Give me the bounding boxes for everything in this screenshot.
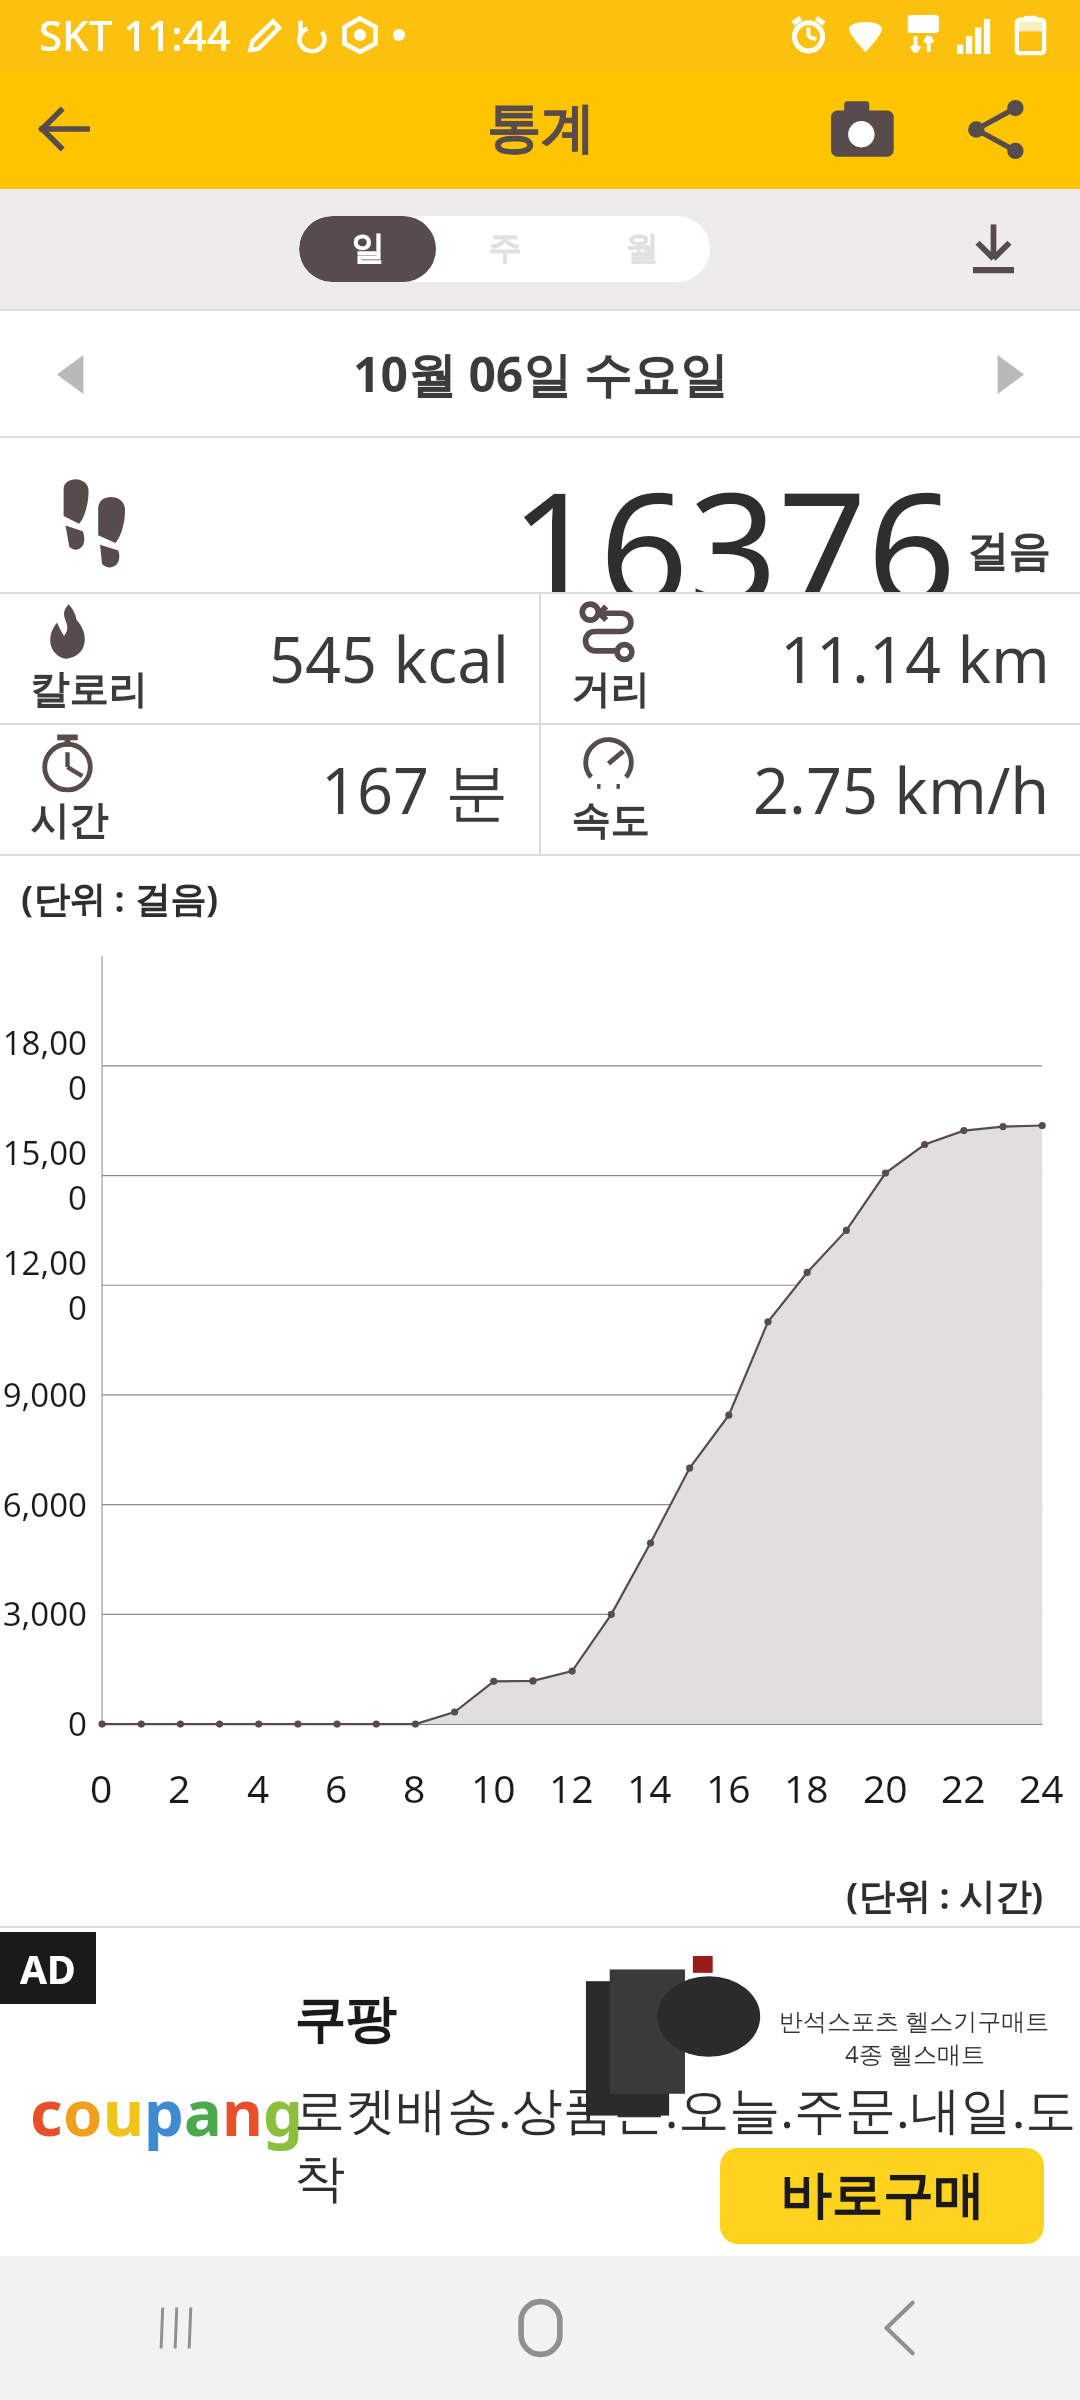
staticText: 4 [247,1761,270,1814]
staticText: 16376 [510,438,957,594]
staticText: 주 [488,228,521,270]
staticText: g [263,2069,303,2155]
staticText: 8 [403,1761,426,1814]
staticText: 칼로리 [30,665,147,714]
staticText: 4종 헬스매트 [845,2037,985,2070]
staticText: 18 [784,1761,829,1814]
staticText: p [144,2069,184,2155]
staticText: 쿠팡 [294,1988,396,2052]
button[interactable]: AD [0,1926,1080,2256]
staticText: 로켓배송.상품은.오늘.주문.내일.도착 [294,2073,1080,2212]
staticText: 10월 06일 수요일 [353,341,728,407]
staticText: 걸음 [966,526,1050,579]
button[interactable]: Share [942,75,1050,183]
button[interactable]: 월 [573,216,710,282]
button[interactable]: 칼로리 [0,594,539,723]
staticText: 18,000 [0,1020,87,1110]
staticText: (단위 : 시간) [846,1871,1044,1920]
button[interactable]: Home [360,2256,720,2400]
staticText: 6,000 [2,1482,87,1527]
button[interactable]: 바로구매 [720,2148,1044,2244]
staticText: 0 [90,1761,113,1814]
staticText: 16 [706,1761,751,1814]
staticText: 24 [1019,1761,1064,1814]
button[interactable]: Recents [0,2256,360,2400]
staticText: 20 [863,1761,908,1814]
button[interactable]: 일 [299,216,436,282]
button[interactable]: 시간 [0,725,539,854]
staticText: 14 [627,1761,672,1814]
staticText: 545 kcal [269,616,509,702]
staticText: c [30,2069,63,2155]
staticText: SKT 11:44 [39,6,231,63]
staticText: 15,000 [0,1130,87,1220]
staticText: 12 [549,1761,594,1814]
staticText: 2.75 km/h [753,747,1050,833]
button[interactable]: Back [720,2256,1080,2400]
staticText: 바로구매 [780,2164,984,2228]
button[interactable]: Camera [810,75,918,183]
staticText: AD [20,1942,76,1995]
button[interactable]: 거리 [541,594,1080,723]
staticText: 속도 [571,796,649,845]
staticText: 0 [68,1701,87,1746]
staticText: (단위 : 걸음) [21,874,219,923]
button[interactable]: Previous day [12,314,132,434]
button[interactable]: Next day [948,314,1068,434]
staticText: 9,000 [2,1372,87,1417]
staticText: 월 [625,228,658,270]
staticText: u [103,2069,144,2155]
staticText: 3,000 [2,1591,87,1636]
button[interactable]: 속도 [541,725,1080,854]
staticText: 167 분 [321,747,509,833]
staticText: n [222,2069,263,2155]
staticText: 6 [325,1761,348,1814]
staticText: 일 [351,228,384,270]
staticText: a [184,2069,222,2155]
staticText: 10 [471,1761,516,1814]
staticText: 11.14 km [780,616,1050,702]
staticText: 반석스포츠 헬스기구매트 [779,2004,1050,2037]
staticText: 22 [941,1761,986,1814]
staticText: 시간 [30,796,108,845]
staticText: o [63,2069,103,2155]
staticText: 12,000 [0,1240,87,1330]
button[interactable]: Back [12,75,120,183]
button[interactable]: 주 [436,216,573,282]
staticText: 거리 [571,665,649,714]
staticText: 2 [168,1761,191,1814]
staticText: 통계 [486,95,594,163]
button[interactable]: Download [942,198,1044,300]
